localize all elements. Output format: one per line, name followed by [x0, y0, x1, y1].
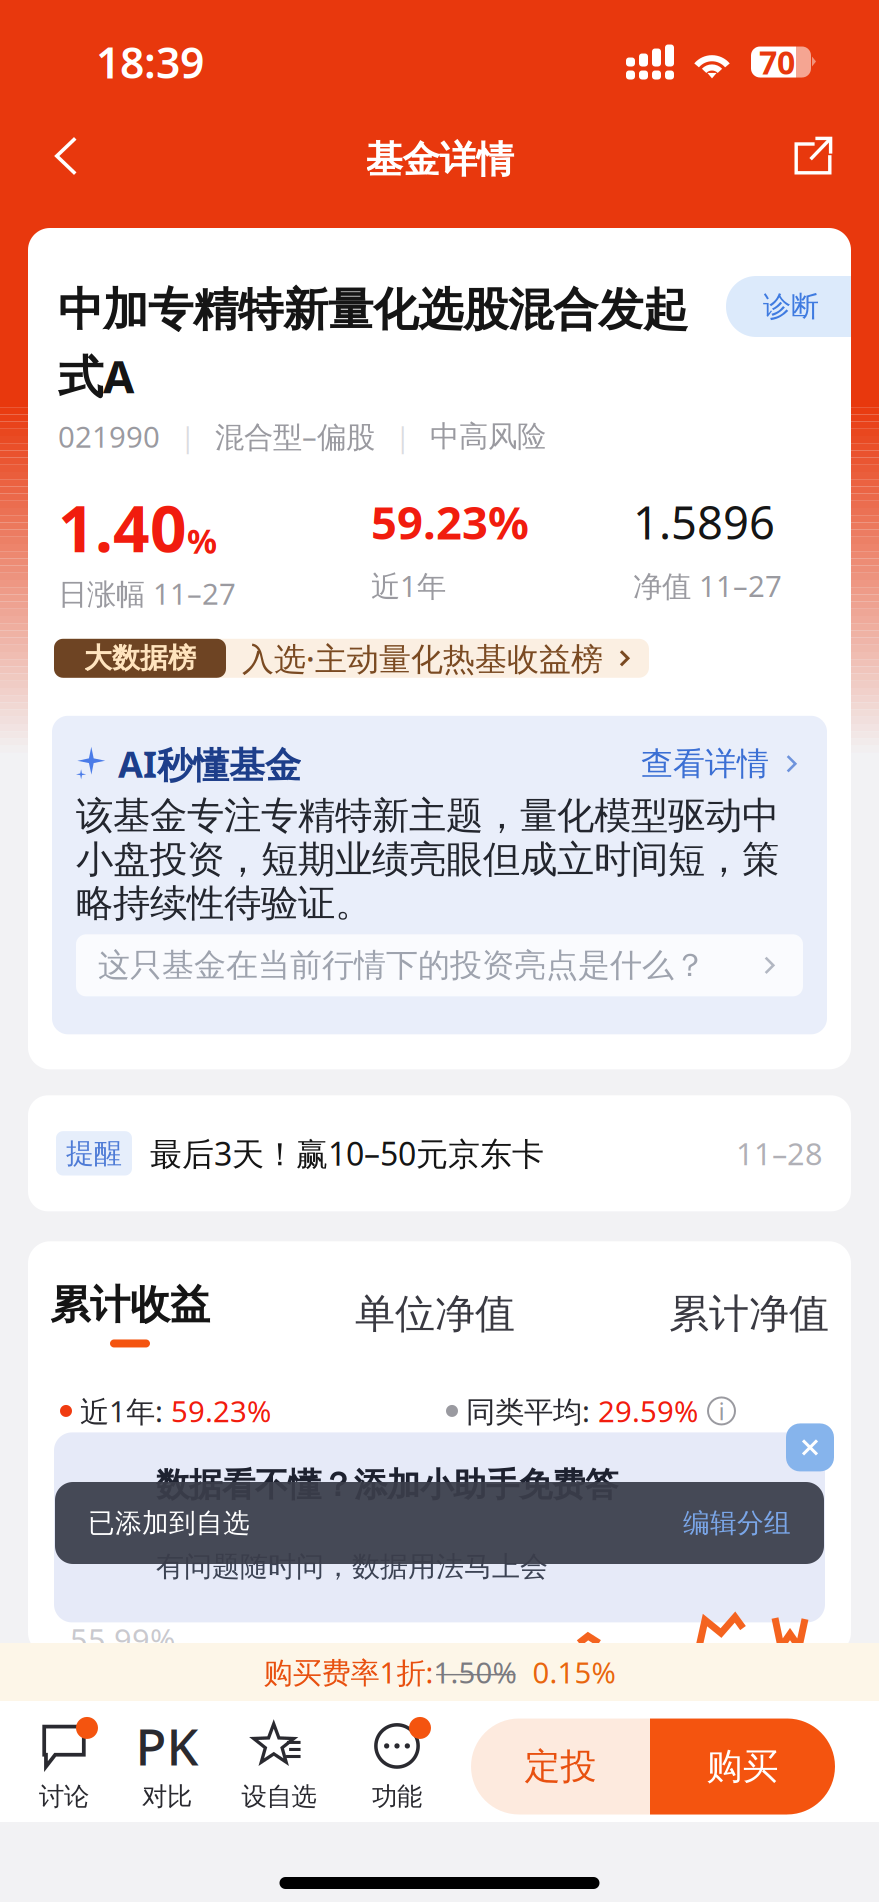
- staticText: %: [187, 519, 217, 563]
- button[interactable]: 单位净值: [290, 1289, 647, 1338]
- staticText: 有问题随时问，数据用法马上会: [156, 1549, 548, 1584]
- staticText: 近1年:: [80, 1391, 171, 1430]
- staticText: 功能: [372, 1781, 422, 1812]
- button[interactable]: 返回: [24, 114, 108, 198]
- staticText: 日涨幅 11–27: [58, 574, 236, 613]
- staticText: AI秒懂基金: [118, 740, 301, 788]
- button[interactable]: 诊断: [726, 276, 851, 337]
- staticText: 提醒: [66, 1136, 122, 1170]
- staticText: 021990: [58, 417, 160, 456]
- staticText: 单位净值: [355, 1289, 515, 1338]
- staticText: 基金详情: [365, 137, 513, 183]
- staticText: 这只基金在当前行情下的投资亮点是什么？: [98, 946, 706, 985]
- staticText: 11–28: [736, 1133, 823, 1174]
- staticText: i: [718, 1395, 724, 1427]
- staticText: 查看详情: [641, 744, 769, 783]
- staticText: 1.40: [58, 485, 187, 570]
- staticText: 1.5896: [633, 492, 775, 552]
- staticText: 59.23%: [171, 1391, 271, 1430]
- staticText: 讨论: [39, 1781, 89, 1812]
- button[interactable]: 讨论: [14, 1721, 114, 1812]
- button[interactable]: PK: [114, 1721, 220, 1812]
- staticText: 59.23%: [371, 492, 529, 552]
- staticText: 大数据榜: [84, 641, 196, 675]
- staticText: 1.50%: [433, 1652, 516, 1691]
- staticText: 同类平均:: [466, 1391, 598, 1430]
- staticText: PK: [135, 1712, 198, 1780]
- staticText: 最后3天！赢10–50元京东卡: [150, 1132, 544, 1175]
- button[interactable]: 大数据榜: [54, 639, 649, 678]
- staticText: 累计收益: [50, 1280, 210, 1329]
- staticText: 设自选: [241, 1781, 316, 1812]
- staticText: 购买费率1折:: [263, 1652, 433, 1691]
- staticText: 中高风险: [430, 418, 546, 454]
- staticText: 定投: [524, 1744, 596, 1789]
- staticText: 55.99%: [70, 1619, 175, 1660]
- staticText: 编辑分组: [683, 1507, 791, 1539]
- staticText: 70: [759, 41, 795, 83]
- staticText: 29.59%: [598, 1391, 698, 1430]
- staticText: 混合型–偏股: [215, 417, 375, 456]
- button[interactable]: 设自选: [220, 1721, 338, 1812]
- button[interactable]: 累计净值: [647, 1289, 829, 1338]
- staticText: 已添加到自选: [88, 1507, 250, 1539]
- staticText: 净值 11–27: [633, 566, 782, 605]
- staticText: 购买: [706, 1744, 778, 1789]
- button[interactable]: 定投: [471, 1718, 650, 1814]
- staticText: 近1年: [371, 566, 446, 605]
- button[interactable]: 购买: [650, 1718, 835, 1814]
- staticText: 累计净值: [669, 1289, 829, 1338]
- staticText: 中加专精特新量化选股混合发起式A: [58, 282, 688, 406]
- staticText: 诊断: [763, 289, 819, 324]
- staticText: 对比: [142, 1781, 192, 1812]
- staticText: 0.15%: [516, 1652, 615, 1691]
- button[interactable]: 分享: [771, 114, 855, 198]
- button[interactable]: 提醒: [28, 1095, 851, 1211]
- staticText: 该基金专注专精特新主题，量化模型驱动中小盘投资，短期业绩亮眼但成立时间短，策略持…: [76, 793, 779, 926]
- staticText: 入选·主动量化热基收益榜: [242, 637, 603, 679]
- button[interactable]: 编辑分组: [683, 1507, 791, 1539]
- button[interactable]: 这只基金在当前行情下的投资亮点是什么？: [76, 934, 803, 996]
- button[interactable]: 查看详情: [641, 744, 803, 783]
- button[interactable]: 关闭: [777, 1432, 825, 1480]
- staticText: |: [395, 418, 410, 455]
- staticText: |: [180, 418, 195, 455]
- staticText: 数据看不懂？添加小助手免费答: [156, 1464, 618, 1505]
- button[interactable]: 累计收益: [50, 1280, 290, 1347]
- staticText: 18:39: [96, 34, 204, 90]
- button[interactable]: 功能: [338, 1721, 456, 1812]
